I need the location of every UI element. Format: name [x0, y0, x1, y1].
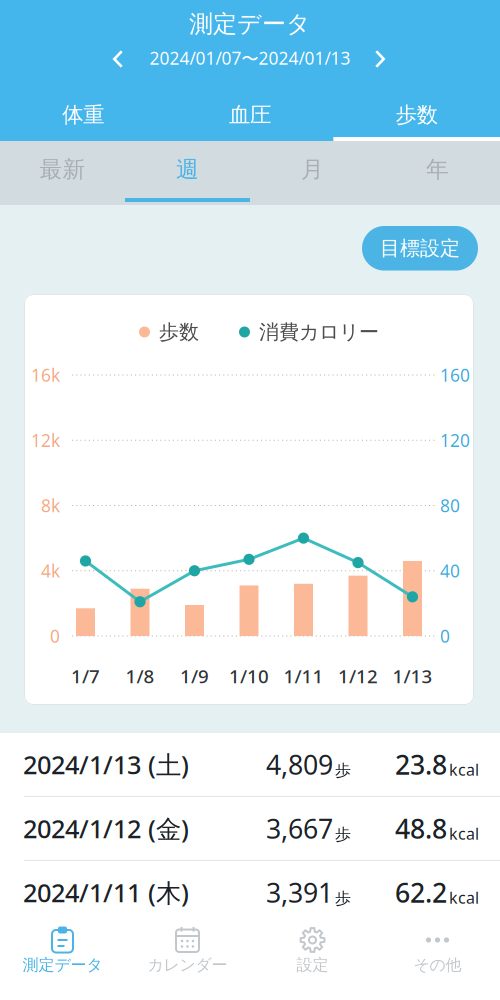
button[interactable]: 最新 [0, 141, 125, 205]
staticText: 消費カロリー [259, 320, 379, 344]
staticText: 歩 [335, 889, 351, 908]
staticText: 1/8 [125, 664, 154, 688]
staticText: 週 [176, 156, 199, 183]
button[interactable]: 目標設定 [362, 226, 478, 271]
staticText: 血圧 [229, 102, 271, 128]
staticText: 1/12 [338, 664, 378, 688]
staticText: 8k [41, 494, 60, 517]
staticText: 40 [440, 559, 460, 582]
staticText: kcal [449, 759, 479, 780]
staticText: 月 [301, 156, 324, 183]
button[interactable]: 2024/1/13 (土) [0, 733, 500, 797]
staticText: 測定データ [189, 9, 311, 39]
button[interactable]: 2024/1/12 (金) [0, 797, 500, 861]
button[interactable]: 血圧 [167, 93, 333, 141]
staticText: 2024/1/13 (土) [23, 748, 189, 781]
button[interactable]: 歩数 [333, 93, 500, 141]
staticText: 2024/1/12 (金) [23, 812, 189, 845]
staticText: 3,667 [266, 811, 333, 846]
staticText: 16k [31, 363, 60, 386]
staticText: カレンダー [147, 955, 227, 975]
staticText: 0 [440, 624, 450, 647]
staticText: kcal [449, 823, 479, 844]
button[interactable]: 2024/1/11 (木) [0, 861, 500, 925]
staticText: 設定 [296, 955, 328, 975]
staticText: 3,391 [266, 875, 333, 910]
staticText: 歩数 [396, 102, 438, 128]
staticText: 歩 [335, 761, 351, 780]
staticText: 4k [41, 559, 60, 582]
button[interactable]: 年 [375, 141, 500, 205]
button[interactable]: 設定 [250, 922, 375, 978]
staticText: 1/7 [71, 664, 100, 688]
staticText: 120 [440, 429, 470, 452]
staticText: 4,809 [266, 747, 333, 782]
staticText: 62.2 [395, 875, 447, 910]
staticText: その他 [413, 955, 461, 975]
staticText: 歩 [335, 825, 351, 844]
staticText: kcal [449, 887, 479, 908]
staticText: 2024/01/07〜2024/01/13 [149, 46, 350, 69]
staticText: 1/9 [180, 664, 209, 688]
staticText: 目標設定 [380, 236, 460, 261]
staticText: 最新 [39, 156, 85, 183]
staticText: 体重 [62, 102, 104, 128]
staticText: 測定データ [22, 955, 102, 975]
button[interactable]: その他 [375, 922, 500, 978]
button[interactable]: 前の週 [97, 40, 139, 78]
staticText: 1/13 [392, 664, 432, 688]
staticText: 年 [426, 156, 449, 183]
button[interactable]: 月 [250, 141, 375, 205]
staticText: 0 [50, 624, 60, 647]
button[interactable]: 週 [125, 141, 250, 205]
button[interactable]: カレンダー [125, 922, 250, 978]
staticText: 歩数 [159, 320, 199, 344]
staticText: 23.8 [395, 747, 447, 782]
staticText: 12k [31, 429, 60, 452]
staticText: 1/10 [229, 664, 269, 688]
button[interactable]: 次の週 [359, 40, 401, 78]
staticText: 1/11 [283, 664, 323, 688]
staticText: 48.8 [395, 811, 447, 846]
staticText: 160 [440, 363, 470, 386]
button[interactable]: 体重 [0, 93, 167, 141]
button[interactable]: 測定データ [0, 922, 125, 978]
staticText: 80 [440, 494, 460, 517]
staticText: 2024/1/11 (木) [23, 876, 189, 909]
